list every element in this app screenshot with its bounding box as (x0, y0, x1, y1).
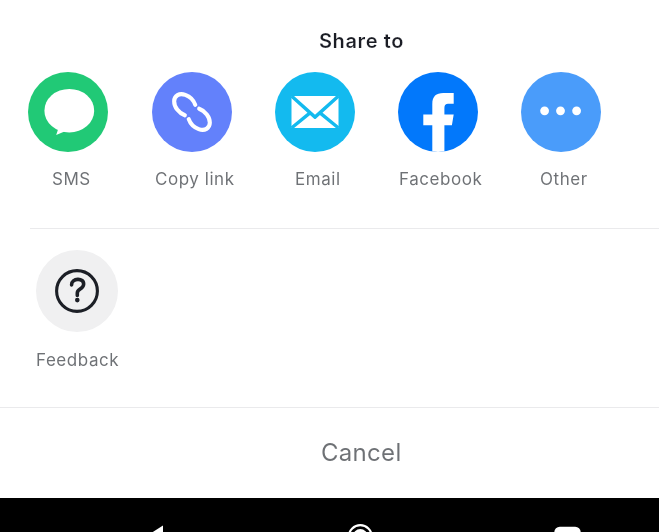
button[interactable]: Feedback (16, 250, 138, 378)
staticText: Other (540, 169, 588, 190)
button[interactable]: Email (255, 72, 375, 196)
button[interactable]: Share to (281, 22, 441, 60)
staticText: Copy link (155, 169, 235, 190)
staticText: Email (295, 169, 341, 190)
other: Feedback (36, 250, 118, 332)
button[interactable]: Home (340, 498, 380, 532)
button[interactable]: Back (136, 498, 176, 532)
button[interactable]: Facebook (378, 72, 498, 196)
staticText: Cancel (321, 438, 402, 467)
button[interactable]: Copy link (132, 72, 252, 196)
button[interactable]: SMS (8, 72, 128, 196)
button[interactable]: Cancel (261, 408, 461, 497)
button[interactable]: Recent apps (548, 498, 588, 532)
staticText: Facebook (399, 169, 483, 190)
staticText: Feedback (36, 350, 120, 371)
button[interactable]: Other (501, 72, 621, 196)
staticText: SMS (52, 169, 91, 190)
staticText: Share to (319, 29, 404, 53)
